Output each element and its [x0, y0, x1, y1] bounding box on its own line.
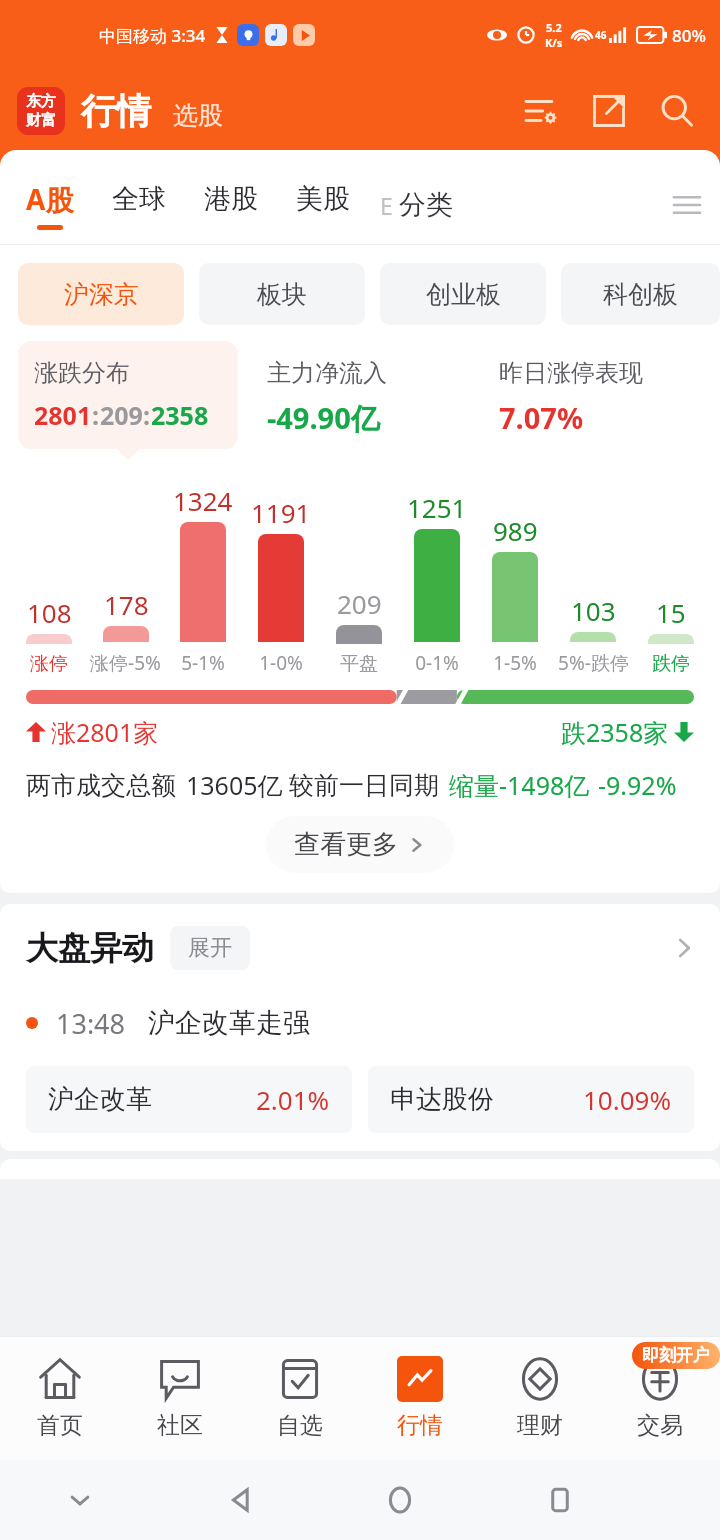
staticText: 0-1% [415, 650, 459, 676]
staticText: : [92, 398, 100, 432]
staticText: 2801 [34, 398, 92, 432]
button[interactable]: 1324 [164, 467, 242, 676]
staticText: 行情 [397, 1411, 443, 1440]
button[interactable]: 1191 [242, 467, 320, 676]
button[interactable]: 涨跌分布 [18, 341, 238, 449]
button[interactable]: 选股 [173, 92, 223, 131]
button[interactable]: 创业板 [380, 263, 546, 325]
button[interactable]: 设置列表 [518, 88, 564, 134]
button[interactable]: 13:48 [26, 992, 720, 1054]
staticText: 178 [104, 587, 149, 622]
button[interactable]: 主力净流入 [251, 341, 470, 455]
staticText: 沪企改革 [48, 1083, 152, 1116]
staticText: 103 [571, 593, 616, 628]
staticText: 1-5% [493, 650, 537, 676]
staticText: 5%-跌停 [558, 650, 629, 676]
staticText: 13:48 [56, 1005, 126, 1042]
staticText: 涨跌分布 [34, 358, 130, 388]
button[interactable]: 989 [476, 467, 554, 676]
staticText: 10.09% [583, 1082, 672, 1117]
staticText: 2.01% [256, 1082, 330, 1117]
button[interactable]: 收起键盘 [0, 1460, 160, 1540]
staticText: 989 [493, 513, 538, 548]
staticText: 15 [656, 595, 686, 630]
staticText: -9.92% [598, 768, 677, 802]
button[interactable]: 全球 [112, 182, 166, 228]
staticText: 板块 [257, 279, 307, 310]
button[interactable]: 分享 [586, 88, 632, 134]
button[interactable]: 美股 [296, 182, 350, 228]
staticText: 平盘 [340, 652, 378, 676]
button[interactable]: 搜索 [654, 88, 700, 134]
staticText: 即刻开户 [642, 1345, 710, 1366]
button[interactable]: 东方财富 [17, 87, 65, 135]
staticText: 创业板 [426, 279, 501, 310]
staticText: 涨2801家 [51, 715, 159, 749]
staticText: 全球 [112, 182, 166, 216]
button[interactable]: 理财 [480, 1336, 600, 1460]
staticText: E [380, 190, 393, 221]
button[interactable]: 沪企改革 [26, 1066, 352, 1133]
button[interactable]: 103 [554, 467, 632, 676]
staticText: 自选 [277, 1411, 323, 1440]
staticText: 涨停-5% [90, 650, 161, 676]
button[interactable]: 申达股份 [368, 1066, 694, 1133]
staticText: 13605亿 [186, 768, 283, 802]
button[interactable]: 返回 [160, 1460, 320, 1540]
staticText: 选股 [173, 100, 223, 131]
staticText: 沪企改革走强 [148, 1006, 310, 1040]
staticText: 5-1% [181, 650, 225, 676]
button[interactable]: 行情 [81, 89, 151, 133]
staticText: 2358 [151, 398, 209, 432]
staticText: 主力净流入 [267, 358, 387, 388]
button[interactable]: 大盘异动 [0, 904, 720, 992]
staticText: 东方 [26, 92, 56, 111]
staticText: 行情 [81, 89, 151, 133]
button[interactable]: E [380, 188, 453, 222]
button[interactable]: 交易 [600, 1336, 720, 1460]
button[interactable]: 最近任务 [480, 1460, 640, 1540]
button[interactable]: 昨日涨停表现 [483, 341, 702, 454]
staticText: 跌2358家 [561, 715, 669, 749]
staticText: 两市成交总额 [26, 770, 176, 801]
staticText: 1-0% [259, 650, 303, 676]
button[interactable]: 更多 [664, 182, 710, 228]
button[interactable]: 沪深京 [18, 263, 184, 325]
button[interactable]: 社区 [120, 1336, 240, 1460]
staticText: 科创板 [603, 279, 678, 310]
staticText: 缩量-1498亿 [449, 768, 590, 802]
staticText: 209 [337, 586, 382, 621]
button[interactable]: 板块 [199, 263, 365, 325]
staticText: 209 [100, 398, 143, 432]
button[interactable]: 港股 [204, 182, 258, 228]
staticText: 沪深京 [64, 279, 139, 310]
button[interactable]: 行情 [360, 1336, 480, 1460]
staticText: 申达股份 [390, 1083, 494, 1116]
staticText: A股 [26, 180, 74, 218]
staticText: 交易 [637, 1411, 683, 1440]
staticText: 5.2 [546, 20, 562, 35]
staticText: 昨日涨停表现 [499, 358, 643, 388]
staticText: 7.07% [499, 398, 584, 437]
button[interactable]: 自选 [240, 1336, 360, 1460]
button[interactable]: 查看更多 [266, 816, 454, 873]
staticText: 108 [27, 595, 72, 630]
staticText: 理财 [517, 1411, 563, 1440]
button[interactable]: 科创板 [561, 263, 720, 325]
button[interactable]: 主屏幕 [320, 1460, 480, 1540]
staticText: K/s [545, 35, 563, 50]
button[interactable]: 1251 [398, 467, 476, 676]
button[interactable]: A股 [26, 180, 74, 230]
button[interactable]: 首页 [0, 1336, 120, 1460]
staticText: 美股 [296, 182, 350, 216]
button[interactable]: 209 [320, 469, 398, 676]
staticText: 财富 [26, 111, 56, 130]
staticText: 中国移动 3:34 [99, 24, 206, 47]
staticText: 1251 [407, 490, 467, 525]
staticText: 展开 [188, 934, 232, 962]
button[interactable]: 15 [632, 469, 710, 676]
staticText: 80% [672, 24, 706, 47]
button[interactable]: 108 [10, 469, 87, 676]
button[interactable]: 178 [87, 467, 164, 676]
staticText: 1324 [173, 483, 233, 518]
